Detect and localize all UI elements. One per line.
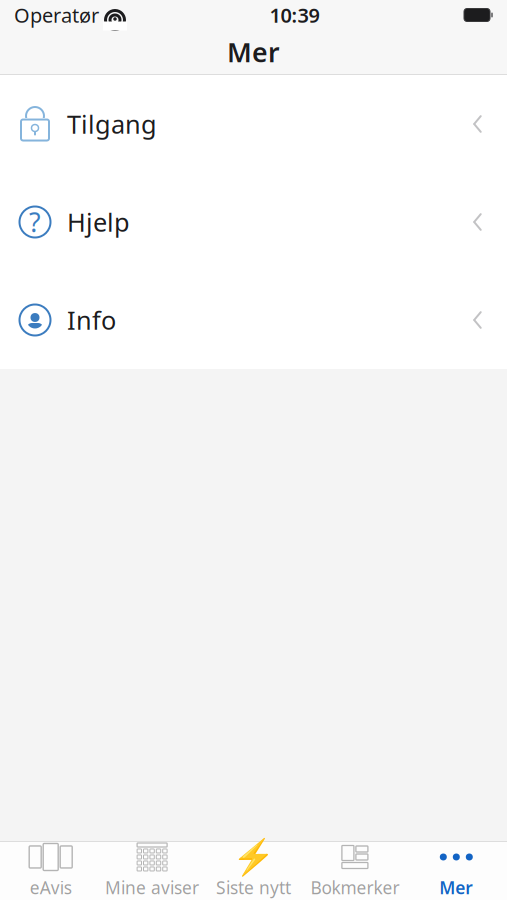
button[interactable]: Bokmerker: [304, 843, 406, 899]
staticText: Operatør: [14, 2, 99, 28]
staticText: ?: [29, 204, 41, 240]
staticText: ⚡: [232, 837, 275, 877]
staticText: Mine aviser: [105, 876, 199, 899]
staticText: Bokmerker: [310, 876, 399, 899]
staticText: Siste nytt: [216, 876, 291, 899]
button[interactable]: Mer: [406, 843, 507, 899]
button[interactable]: ?: [0, 173, 507, 271]
button[interactable]: Info: [0, 271, 507, 369]
staticText: Tilgang: [67, 107, 157, 141]
staticText: Mer: [439, 876, 473, 899]
button[interactable]: ⚡: [203, 843, 304, 899]
button[interactable]: Tilgang: [0, 75, 507, 173]
staticText: Hjelp: [67, 205, 130, 239]
button[interactable]: eAvis: [0, 843, 101, 899]
staticText: 10:39: [269, 2, 319, 28]
staticText: Info: [67, 303, 116, 337]
button[interactable]: Mine aviser: [101, 843, 203, 899]
staticText: eAvis: [30, 876, 72, 899]
staticText: Mer: [227, 34, 280, 70]
